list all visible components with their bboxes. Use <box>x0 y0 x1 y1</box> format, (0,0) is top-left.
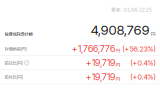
staticText: 円 <box>115 47 120 54</box>
staticText: 円 <box>115 61 120 68</box>
staticText: 更新 : 01/06 22:25 <box>111 6 152 13</box>
staticText: 前日比(円) <box>4 60 22 66</box>
staticText: 前月比(円) <box>4 74 22 80</box>
staticText: 投資信託合計額 <box>4 31 32 37</box>
staticText: (+0.4%) <box>130 72 155 81</box>
button[interactable]: 前日比(円) <box>0 56 160 70</box>
button[interactable]: 評価損益(円) <box>0 42 160 55</box>
staticText: 4,908,769 <box>91 22 150 38</box>
staticText: +19,719 <box>86 71 115 82</box>
staticText: 評価損益(円) <box>4 46 26 52</box>
staticText: (+0.4%) <box>130 58 155 67</box>
staticText: +1,766,776 <box>72 43 115 54</box>
staticText: +19,719 <box>86 57 115 68</box>
button[interactable]: 前月比(円) <box>0 70 160 84</box>
staticText: 円 <box>115 75 120 82</box>
staticText: (+56.23%) <box>122 44 155 53</box>
staticText: 円 <box>150 30 155 37</box>
